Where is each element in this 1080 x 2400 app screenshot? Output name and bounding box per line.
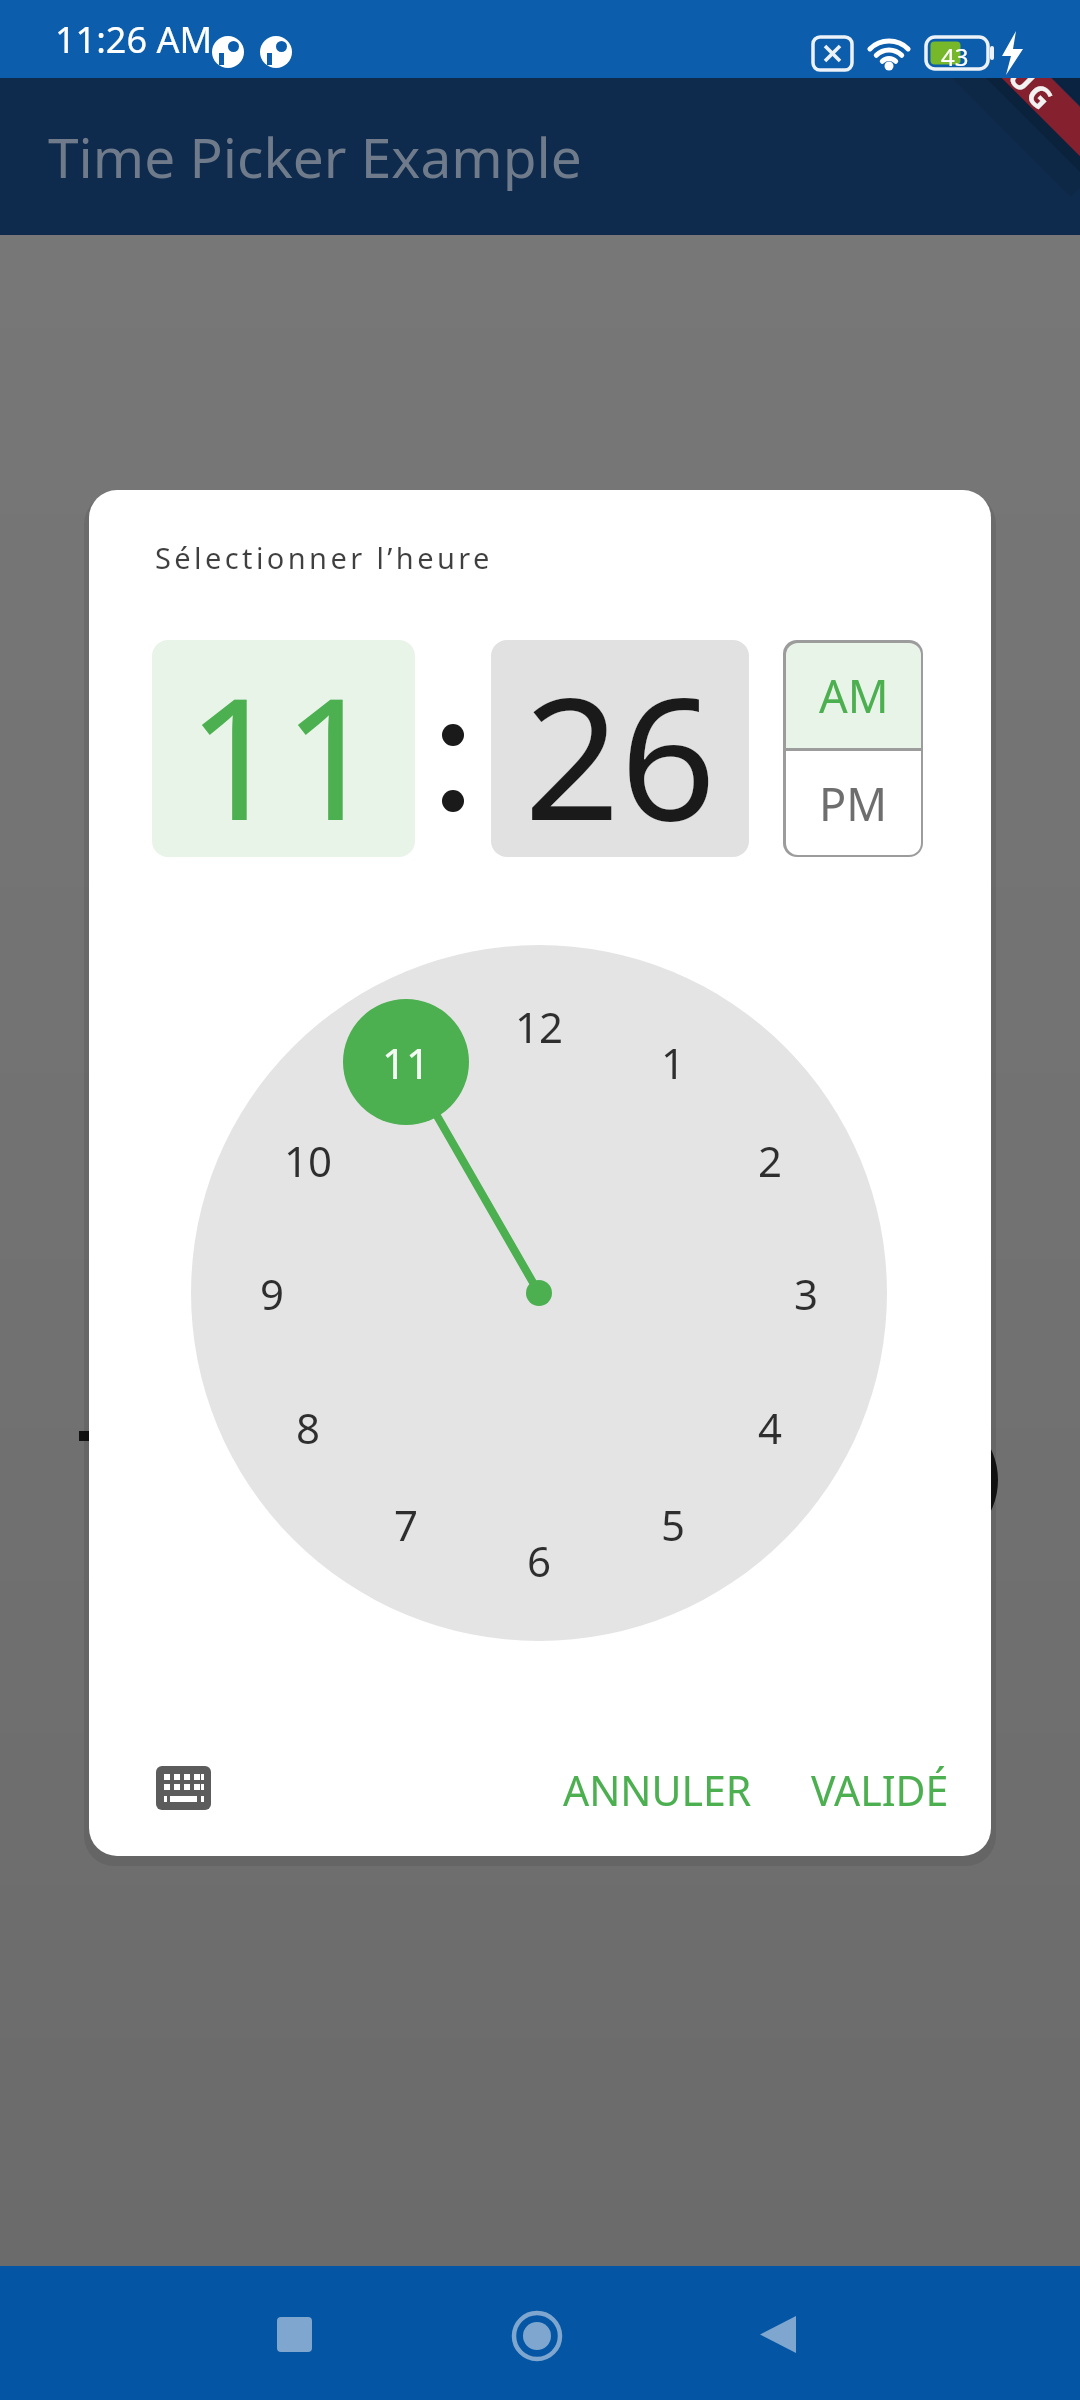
button[interactable]: 26 — [491, 640, 749, 857]
button[interactable] — [500, 2299, 574, 2373]
staticText: VALIDÉ — [811, 1762, 949, 1818]
staticText: 6 — [527, 1532, 552, 1589]
staticText: 5 — [661, 1496, 686, 1553]
staticText: 9 — [260, 1265, 285, 1322]
button[interactable]: PM — [786, 751, 921, 855]
staticText: 10 — [284, 1132, 333, 1189]
button[interactable]: AM — [786, 643, 921, 748]
staticText: Sélectionner l’heure — [155, 538, 493, 577]
staticText: 11 — [382, 1034, 431, 1091]
button[interactable]: ANNULER — [547, 1757, 767, 1823]
staticText: DEBUG — [956, 8, 1065, 116]
button[interactable] — [257, 2297, 331, 2371]
staticText: 1 — [661, 1034, 686, 1091]
staticText: ANNULER — [563, 1762, 752, 1818]
staticText: AM — [819, 665, 889, 726]
staticText: PM — [819, 773, 888, 834]
button[interactable] — [743, 2299, 817, 2373]
staticText: 12 — [515, 998, 564, 1055]
button[interactable]: 11 — [152, 640, 415, 857]
staticText: 43 — [941, 40, 969, 73]
button[interactable]: VALIDÉ — [800, 1757, 960, 1823]
button[interactable] — [156, 1766, 211, 1810]
staticText: 26 — [524, 640, 717, 857]
staticText: 11:26 AM — [55, 15, 213, 64]
staticText: 11 — [187, 640, 380, 857]
staticText: 7 — [394, 1496, 419, 1553]
staticText: 8 — [296, 1399, 321, 1456]
staticText: 4 — [758, 1399, 783, 1456]
staticText: 2 — [758, 1132, 783, 1189]
staticText: 3 — [794, 1265, 819, 1322]
staticText: Time Picker Example — [48, 119, 582, 194]
